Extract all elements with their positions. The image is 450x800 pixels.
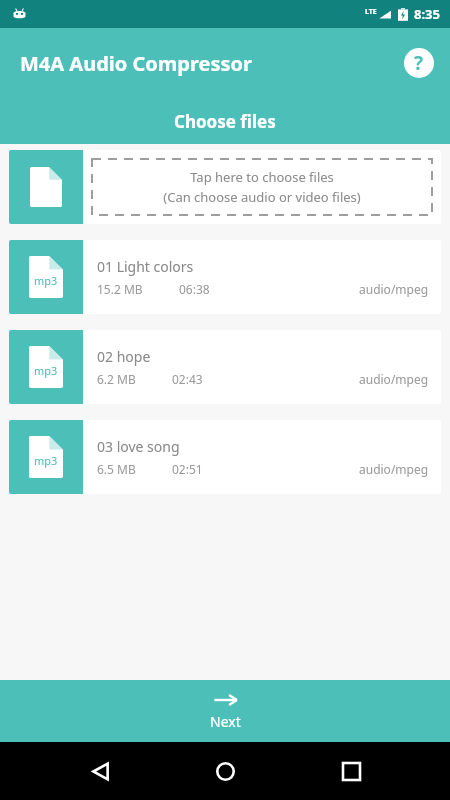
staticText: audio/mpeg — [359, 461, 429, 477]
staticText: M4A Audio Compressor — [20, 50, 252, 77]
staticText: 06:38 — [179, 281, 210, 297]
button[interactable]: Next — [0, 680, 450, 742]
button[interactable]: Tap here to choose files — [9, 150, 441, 224]
staticText: 03 love song — [97, 437, 180, 456]
staticText: 15.2 MB — [97, 281, 143, 297]
staticText: 01 Light colors — [97, 257, 194, 276]
staticText: mp3 — [34, 453, 58, 468]
button[interactable]: mp3 — [9, 420, 441, 494]
staticText: Choose files — [174, 110, 276, 133]
staticText: 02:43 — [172, 371, 203, 387]
staticText: (Can choose audio or video files) — [163, 188, 361, 206]
button[interactable]: Choose files — [0, 98, 450, 144]
staticText: 6.2 MB — [97, 371, 136, 387]
staticText: 8:35 — [414, 5, 440, 23]
staticText: ? — [414, 50, 424, 76]
staticText: mp3 — [34, 273, 58, 288]
staticText: 6.5 MB — [97, 461, 136, 477]
button[interactable]: Recent apps — [325, 745, 377, 797]
staticText: Tap here to choose files — [190, 168, 334, 186]
staticText: LTE — [365, 7, 377, 17]
button[interactable]: Help — [402, 46, 436, 80]
button[interactable]: Back — [74, 745, 126, 797]
button[interactable]: mp3 — [9, 330, 441, 404]
staticText: audio/mpeg — [359, 371, 429, 387]
button[interactable]: mp3 — [9, 240, 441, 314]
staticText: 02 hope — [97, 347, 151, 366]
staticText: Next — [210, 712, 241, 731]
staticText: audio/mpeg — [359, 281, 429, 297]
staticText: mp3 — [34, 363, 58, 378]
button[interactable]: Home — [199, 745, 251, 797]
staticText: 02:51 — [172, 461, 203, 477]
